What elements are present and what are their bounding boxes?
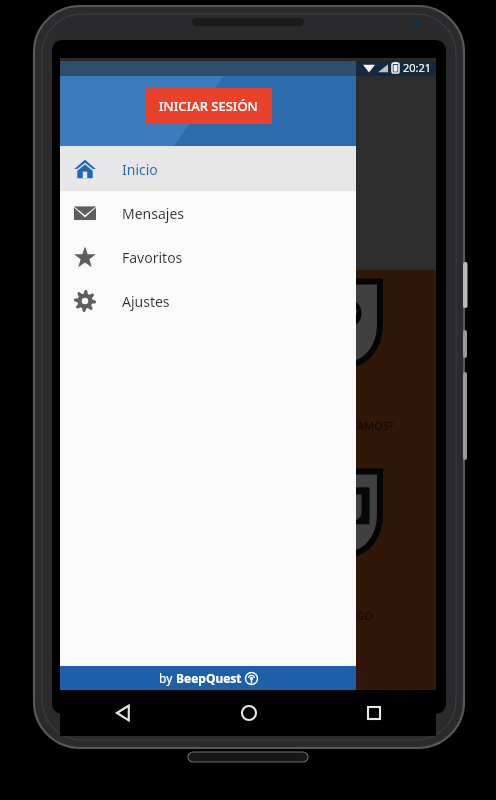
staticText: Inicio — [122, 160, 158, 179]
button[interactable]: Inicio — [60, 147, 356, 191]
staticText: Favoritos — [122, 248, 183, 267]
button[interactable]: by — [60, 666, 356, 690]
staticText: Mensajes — [122, 204, 185, 223]
staticText: by — [159, 670, 176, 686]
staticText: Ajustes — [122, 292, 170, 311]
staticText: 20:21 — [403, 60, 432, 75]
button[interactable]: Favoritos — [60, 235, 356, 279]
staticText: ¿DÓNDE ESTAMOS? — [292, 418, 394, 433]
button[interactable]: Back — [60, 690, 186, 736]
button[interactable]: Recent apps — [311, 690, 436, 736]
button[interactable]: INICIAR SESIÓN — [145, 88, 272, 124]
button[interactable]: Mensajes — [60, 191, 356, 235]
button[interactable]: Home — [186, 690, 311, 736]
staticText: INICIAR SESIÓN — [159, 97, 258, 115]
button[interactable]: Ajustes — [60, 279, 356, 323]
staticText: BeepQuest — [176, 670, 242, 686]
staticText: CATÁLOGO — [316, 608, 373, 623]
